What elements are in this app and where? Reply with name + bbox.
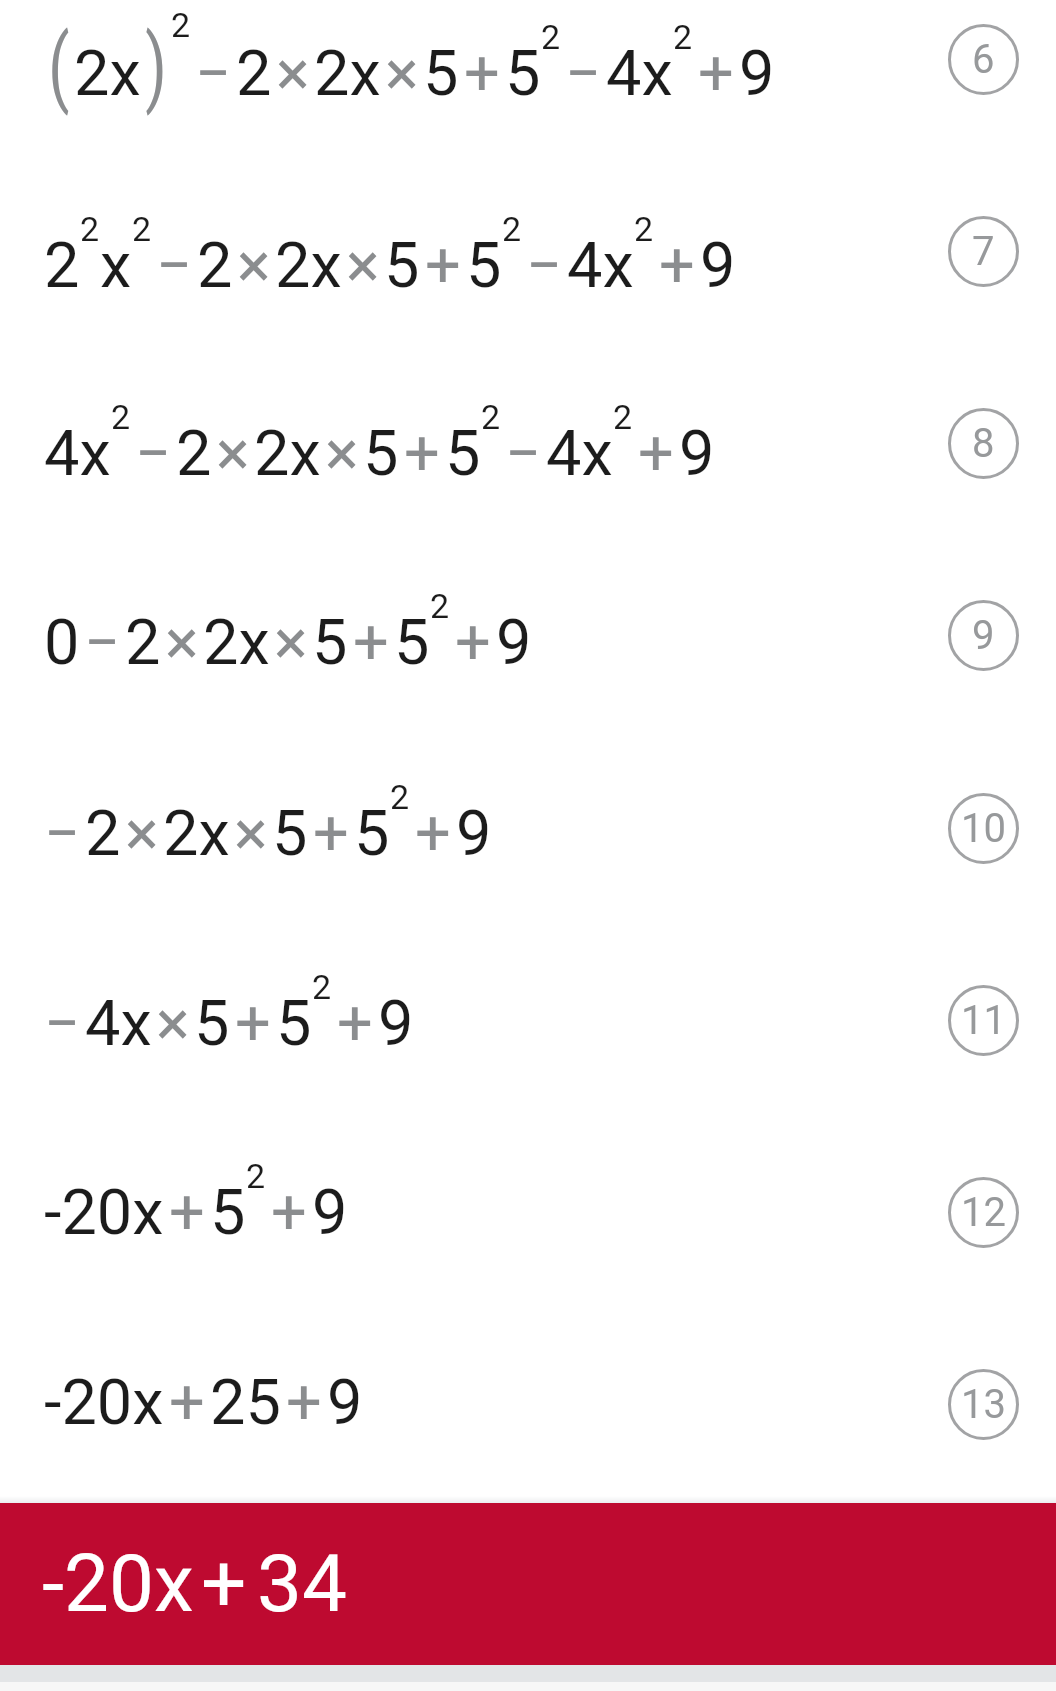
staticText: 9 — [739, 37, 775, 111]
staticText: 9 — [312, 1176, 348, 1250]
staticText: 2 — [430, 586, 450, 626]
button[interactable]: − — [0, 949, 1056, 1139]
staticText: 2 — [132, 209, 152, 249]
staticText: + — [286, 1366, 322, 1440]
staticText: 5 — [505, 37, 541, 111]
staticText: + — [169, 1366, 205, 1440]
staticText: 2 — [502, 209, 522, 249]
staticText: + — [415, 797, 451, 871]
staticText: 2 — [125, 606, 161, 680]
staticText: 2 — [111, 397, 131, 437]
staticText: 5 — [194, 987, 230, 1061]
staticText: − — [565, 37, 602, 111]
staticText: 4x — [85, 987, 152, 1061]
button[interactable]: 0 — [0, 569, 1056, 759]
staticText: 2 — [613, 397, 633, 437]
staticText: + — [638, 417, 674, 491]
staticText: 2x — [203, 606, 270, 680]
staticText: + — [455, 606, 491, 680]
staticText: − — [44, 797, 81, 871]
staticText: × — [234, 797, 268, 871]
staticText: 2 — [390, 777, 410, 817]
staticText: 9 — [972, 612, 995, 659]
staticText: × — [165, 606, 199, 680]
staticText: − — [44, 987, 81, 1061]
staticText: + — [169, 1176, 205, 1250]
staticText: 2 — [481, 397, 501, 437]
staticText: − — [156, 229, 193, 303]
staticText: ) — [145, 16, 167, 117]
staticText: × — [125, 797, 159, 871]
staticText: 4x — [567, 229, 634, 303]
staticText: × — [274, 606, 308, 680]
staticText: 12 — [961, 1189, 1006, 1236]
staticText: + — [313, 797, 349, 871]
staticText: 2 — [246, 1156, 266, 1196]
staticText: 2 — [236, 37, 272, 111]
staticText: + — [698, 37, 734, 111]
staticText: 2x — [163, 797, 230, 871]
staticText: + — [353, 606, 389, 680]
staticText: ( — [48, 16, 70, 117]
staticText: 6 — [972, 36, 995, 83]
staticText: 4x — [44, 417, 111, 491]
button[interactable]: 4x — [0, 379, 1056, 569]
staticText: 2 — [176, 417, 212, 491]
staticText: + — [235, 987, 271, 1061]
staticText: × — [385, 37, 419, 111]
staticText: 2 — [634, 209, 654, 249]
staticText: x — [100, 229, 132, 303]
staticText: − — [84, 606, 121, 680]
staticText: 2x — [74, 37, 141, 111]
staticText: 8 — [972, 420, 995, 467]
staticText: 34 — [257, 1537, 347, 1631]
staticText: 2x — [275, 229, 342, 303]
staticText: 5 — [394, 606, 430, 680]
staticText: × — [346, 229, 380, 303]
button[interactable]: ( — [0, 0, 1056, 190]
staticText: 9 — [327, 1366, 363, 1440]
button[interactable]: -20x — [0, 1503, 1056, 1665]
staticText: × — [237, 229, 271, 303]
staticText: 7 — [972, 228, 995, 275]
staticText: × — [216, 417, 250, 491]
staticText: -20x — [44, 1176, 164, 1250]
staticText: + — [659, 229, 695, 303]
button[interactable]: − — [0, 759, 1056, 949]
staticText: 4x — [546, 417, 613, 491]
staticText: × — [156, 987, 190, 1061]
staticText: 4x — [606, 37, 673, 111]
button[interactable]: 2 — [0, 190, 1056, 380]
staticText: × — [276, 37, 310, 111]
staticText: + — [404, 417, 440, 491]
staticText: 9 — [456, 797, 492, 871]
staticText: -20x — [44, 1366, 164, 1440]
staticText: − — [135, 417, 172, 491]
staticText: 0 — [44, 606, 80, 680]
staticText: − — [526, 229, 563, 303]
staticText: × — [325, 417, 359, 491]
button[interactable]: -20x — [0, 1138, 1056, 1328]
staticText: 13 — [961, 1381, 1006, 1428]
staticText: 2x — [254, 417, 321, 491]
staticText: 9 — [496, 606, 532, 680]
staticText: 2x — [314, 37, 381, 111]
staticText: 2 — [197, 229, 233, 303]
staticText: − — [505, 417, 542, 491]
staticText: 11 — [961, 997, 1006, 1044]
staticText: 5 — [384, 229, 420, 303]
staticText: + — [201, 1537, 247, 1631]
button[interactable]: -20x — [0, 1328, 1056, 1518]
staticText: -20x — [42, 1537, 194, 1631]
staticText: 2 — [44, 229, 80, 303]
staticText: 2 — [80, 209, 100, 249]
staticText: 5 — [445, 417, 481, 491]
staticText: 5 — [210, 1176, 246, 1250]
staticText: 5 — [276, 987, 312, 1061]
staticText: 2 — [673, 17, 693, 57]
staticText: 5 — [423, 37, 459, 111]
staticText: 5 — [272, 797, 308, 871]
staticText: 2 — [171, 5, 191, 45]
staticText: + — [271, 1176, 307, 1250]
staticText: 5 — [466, 229, 502, 303]
